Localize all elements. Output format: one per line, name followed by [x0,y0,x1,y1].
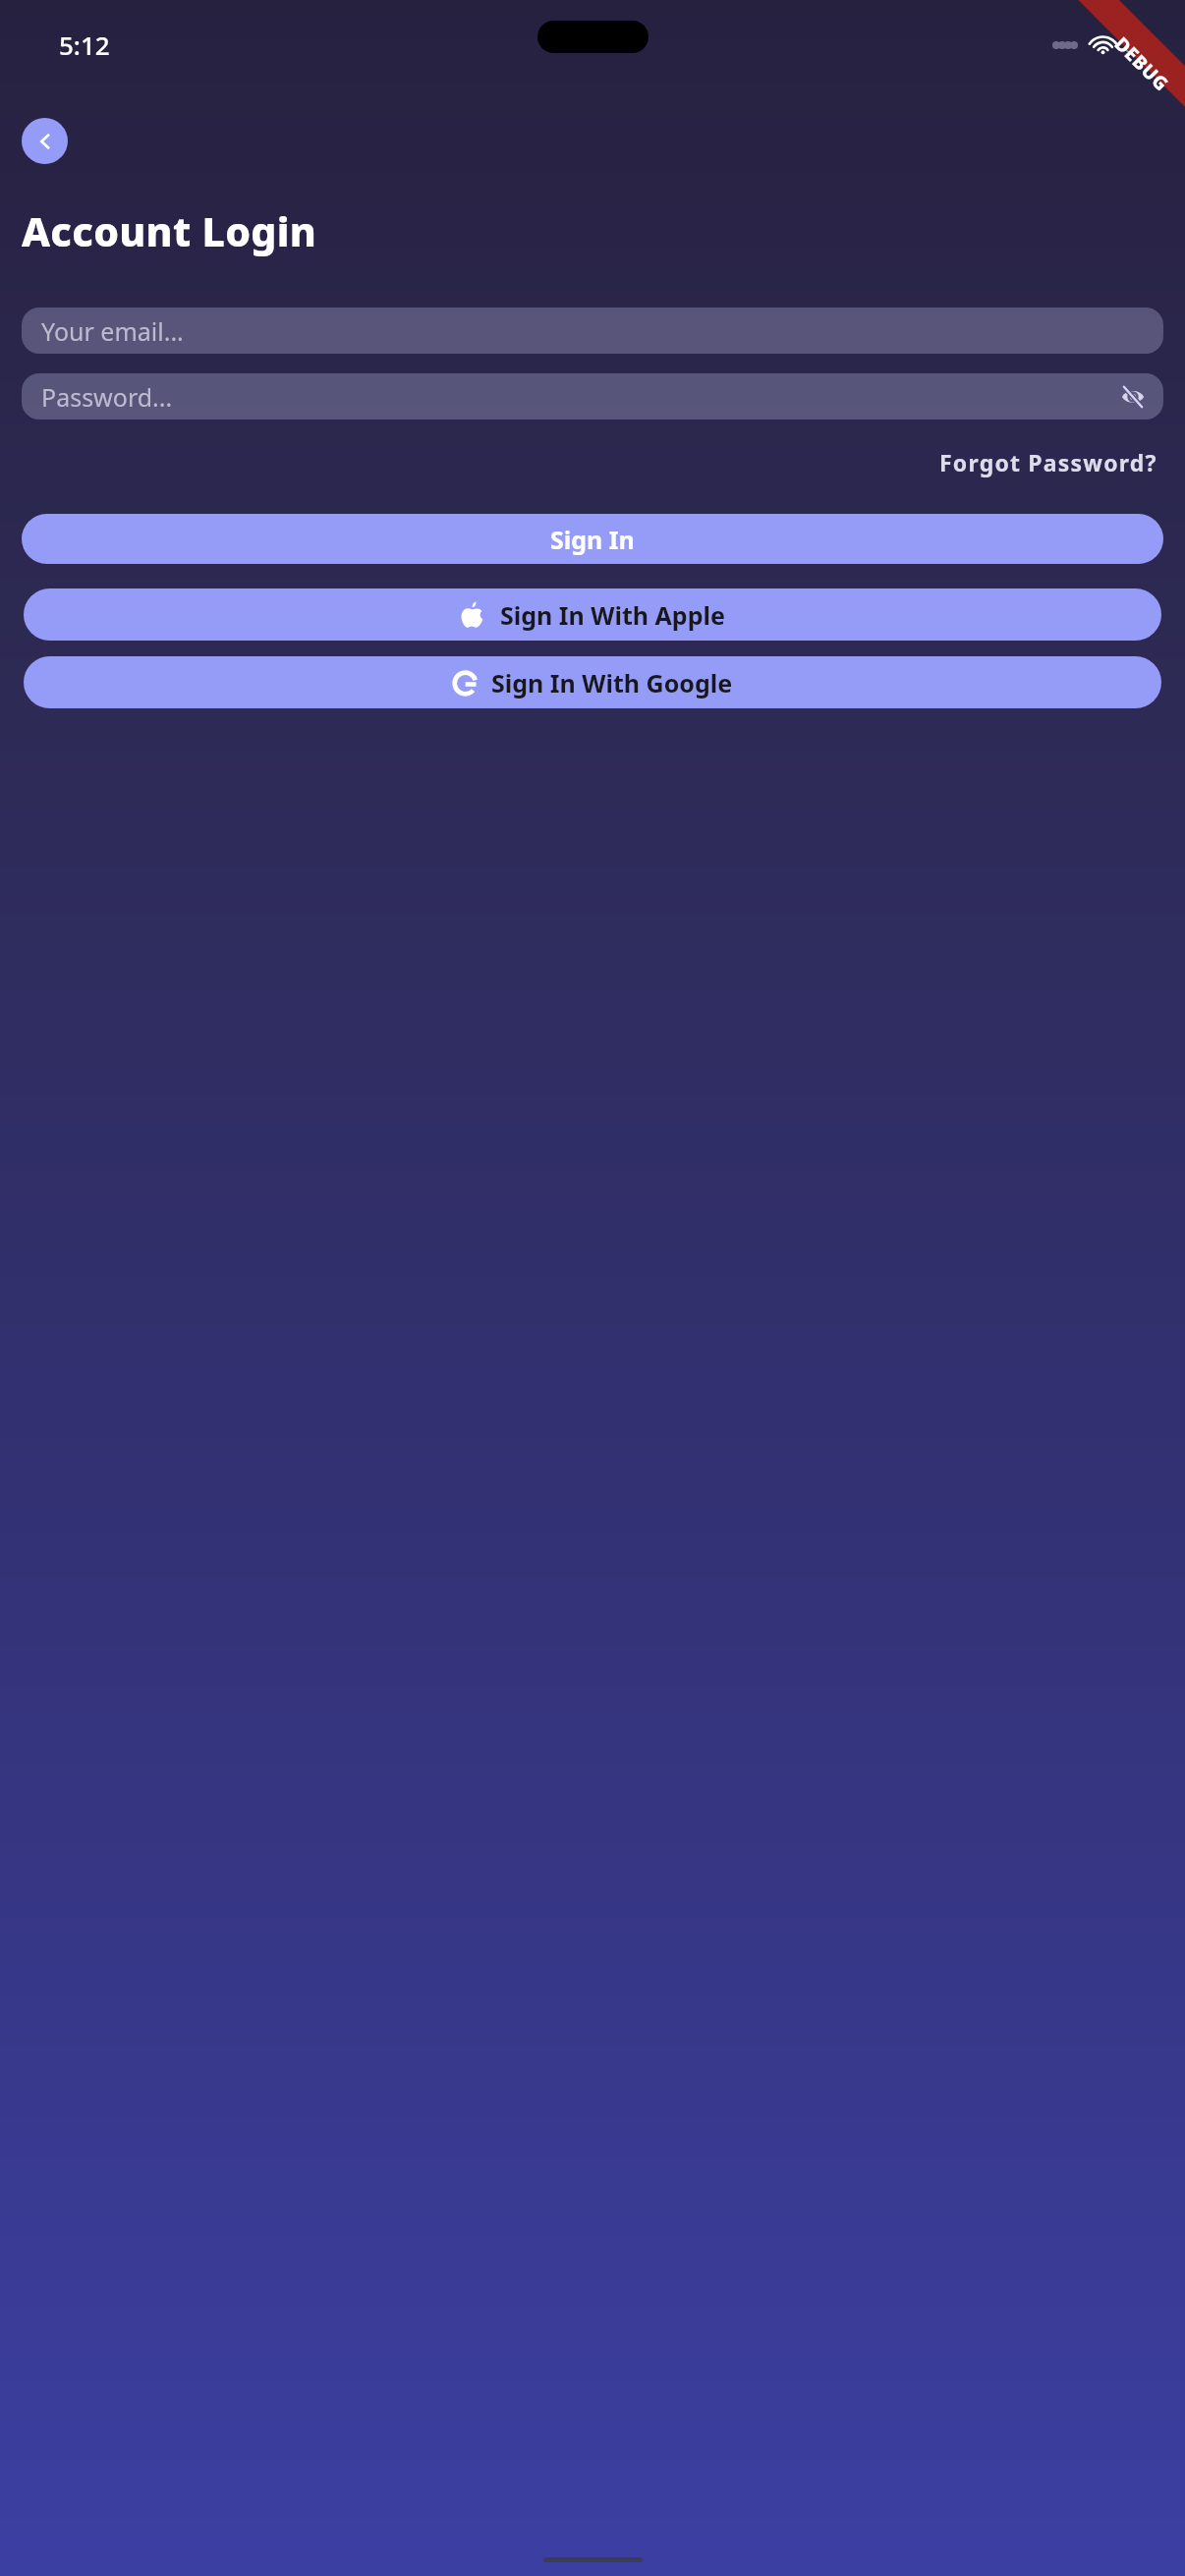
button[interactable]: Sign In With Google [24,656,1161,708]
button[interactable]: Show password [1116,380,1150,414]
button[interactable]: Sign In [22,514,1163,564]
staticText: Forgot Password? [939,447,1157,477]
staticText: Account Login [22,203,317,258]
staticText: Password... [41,380,173,414]
button[interactable]: Sign In With Apple [24,588,1161,641]
staticText: 5:12 [59,28,110,62]
staticText: Sign In With Apple [500,598,725,632]
button[interactable]: Password... [22,373,1163,420]
button[interactable]: Back [22,118,68,164]
button[interactable]: Your email... [22,308,1163,354]
staticText: Your email... [41,314,184,348]
staticText: Sign In [550,523,635,556]
staticText: DEBUG [1109,31,1174,97]
button[interactable]: Forgot Password? [939,441,1185,483]
staticText: Sign In With Google [491,666,733,700]
